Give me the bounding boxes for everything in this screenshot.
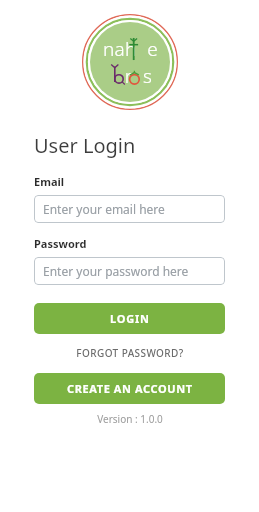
button[interactable]: Enter your email here: [34, 195, 225, 223]
other: Nahte Bros logo: [82, 14, 178, 110]
staticText: CREATE AN ACCOUNT: [67, 381, 193, 396]
button[interactable]: Enter your password here: [34, 257, 225, 285]
staticText: FORGOT PASSWORD?: [76, 346, 184, 360]
button[interactable]: LOGIN: [34, 303, 225, 334]
staticText: Password: [34, 236, 87, 251]
staticText: r s: [109, 63, 153, 89]
button[interactable]: CREATE AN ACCOUNT: [34, 373, 225, 404]
staticText: nah e: [103, 36, 158, 62]
staticText: Version : 1.0.0: [97, 412, 163, 426]
button[interactable]: FORGOT PASSWORD?: [34, 346, 225, 360]
staticText: Enter your password here: [43, 263, 189, 279]
staticText: LOGIN: [110, 311, 150, 326]
staticText: Email: [34, 174, 65, 189]
staticText: Enter your email here: [43, 201, 165, 217]
staticText: User Login: [34, 132, 136, 159]
